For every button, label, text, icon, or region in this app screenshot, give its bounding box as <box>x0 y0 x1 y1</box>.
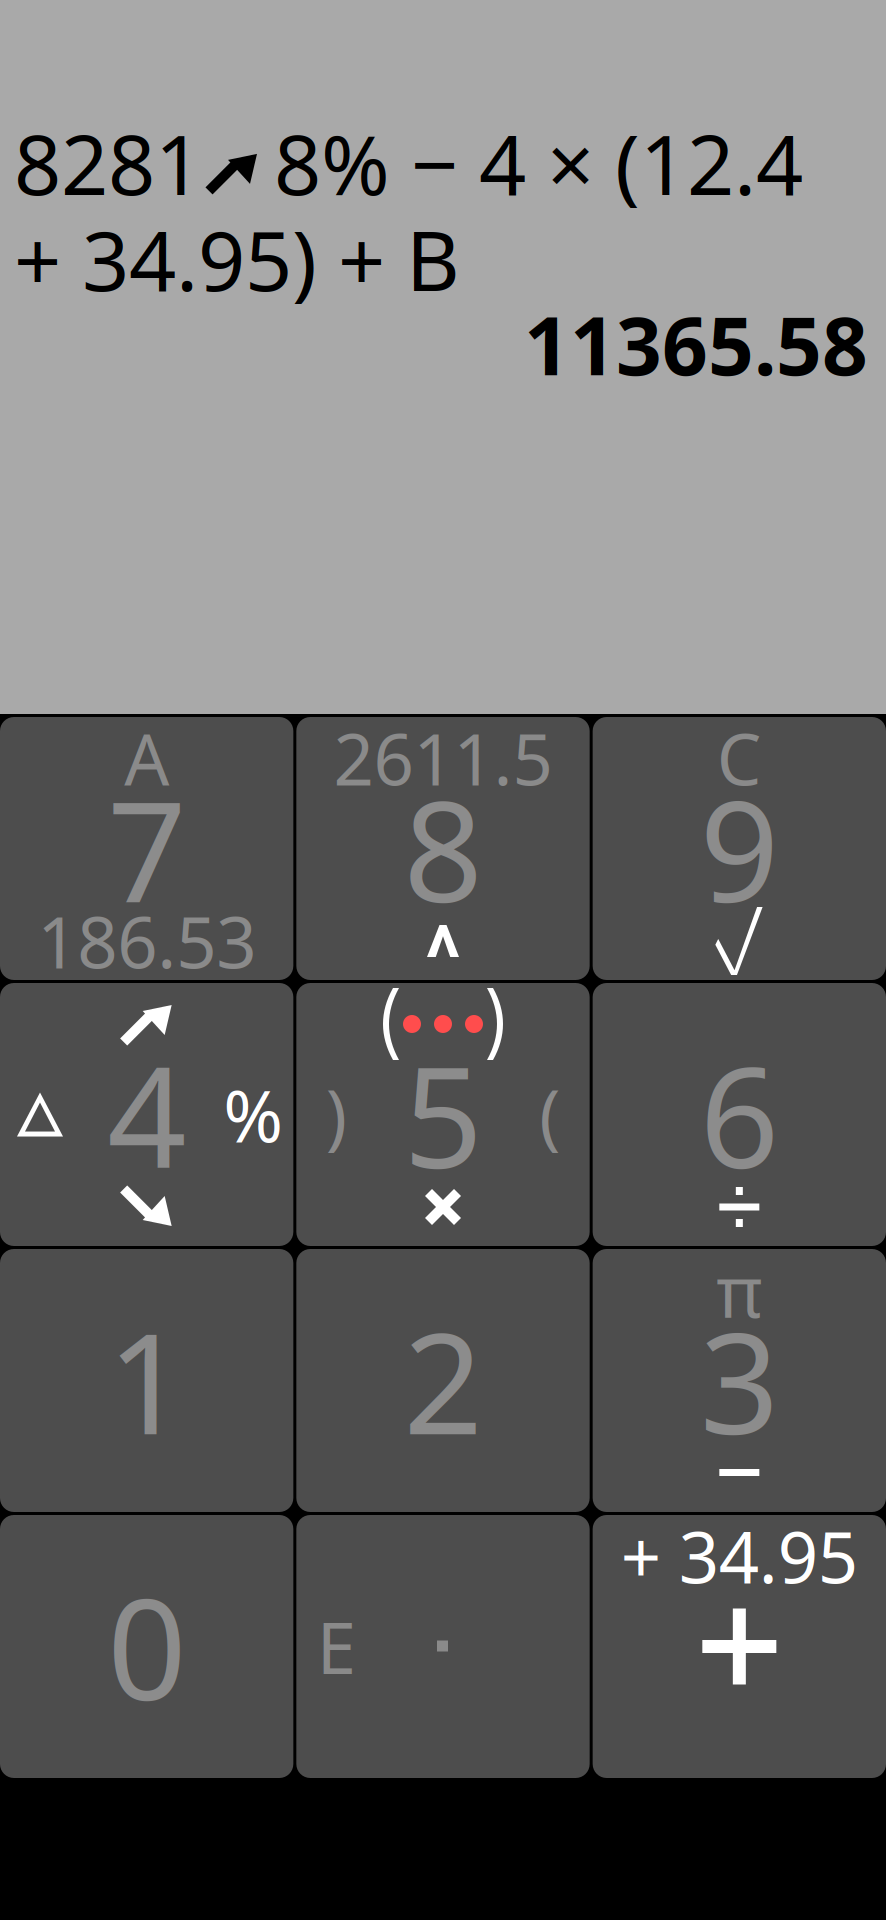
button[interactable]: 0 <box>0 1515 293 1778</box>
button[interactable]: 9 square root <box>593 717 886 980</box>
staticText: 8 <box>403 756 482 940</box>
staticText: 2 <box>403 1288 482 1472</box>
button[interactable]: 6 divide <box>593 983 886 1246</box>
staticText: 1 <box>107 1288 186 1472</box>
staticText: A <box>124 711 169 805</box>
staticText: 2611.5 <box>333 711 552 805</box>
staticText: 7 <box>107 756 186 940</box>
button[interactable]: 4 percent <box>0 983 293 1246</box>
staticText: ) <box>326 1068 347 1161</box>
button[interactable]: 2 <box>296 1249 590 1512</box>
button[interactable]: 7 <box>0 717 293 980</box>
staticText: 8281 <box>14 108 202 218</box>
button[interactable]: 3 minus <box>593 1249 886 1512</box>
staticText: 9 <box>700 756 779 940</box>
button[interactable]: 5 multiply <box>296 983 590 1246</box>
staticText: 5 <box>403 1022 482 1206</box>
staticText: 0 <box>107 1554 186 1738</box>
staticText: 11365.58 <box>524 291 868 397</box>
button[interactable]: 8 power <box>296 717 590 980</box>
staticText: 186.53 <box>37 894 256 988</box>
staticText: + 34.95) + B <box>14 204 460 314</box>
staticText: 8% − 4 × (12.4 <box>274 108 803 218</box>
staticText: E <box>317 1600 356 1693</box>
staticText: 3 <box>700 1288 779 1472</box>
button[interactable]: decimal point <box>296 1515 590 1778</box>
staticText: % <box>223 1067 283 1162</box>
staticText: ( <box>539 1068 560 1161</box>
staticText: + 34.95 <box>621 1509 858 1603</box>
button[interactable]: plus 34.95 <box>593 1515 886 1778</box>
staticText: 6 <box>700 1022 779 1206</box>
staticText: 4 <box>107 1022 186 1206</box>
staticText: π <box>716 1243 762 1337</box>
staticText: C <box>717 711 762 805</box>
button[interactable]: 1 <box>0 1249 293 1512</box>
